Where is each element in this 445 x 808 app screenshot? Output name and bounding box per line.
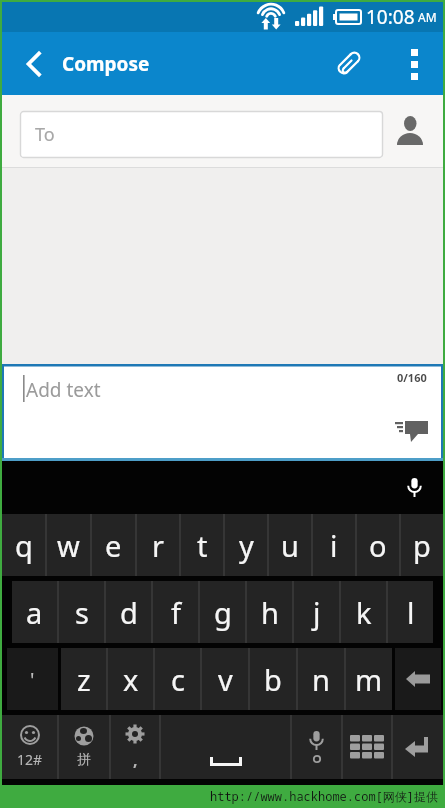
button[interactable]: e bbox=[92, 514, 135, 576]
staticText: p bbox=[413, 526, 431, 565]
button[interactable]: i bbox=[313, 514, 355, 576]
staticText: 10:08 bbox=[366, 4, 415, 30]
button[interactable] bbox=[327, 43, 369, 85]
button[interactable]: a bbox=[12, 581, 57, 643]
staticText: To bbox=[35, 122, 55, 147]
staticText: x bbox=[123, 660, 139, 699]
button[interactable] bbox=[343, 715, 391, 779]
staticText: d bbox=[120, 593, 138, 632]
staticText: z bbox=[77, 660, 91, 699]
button[interactable] bbox=[393, 715, 443, 779]
staticText: c bbox=[171, 660, 185, 699]
button[interactable] bbox=[16, 46, 52, 82]
staticText: o bbox=[369, 526, 387, 565]
staticText: ' bbox=[30, 666, 35, 693]
button[interactable]: w bbox=[47, 514, 90, 576]
staticText: k bbox=[356, 593, 372, 632]
staticText: AM bbox=[418, 9, 437, 25]
button[interactable]: h bbox=[247, 581, 292, 643]
button[interactable]: g bbox=[200, 581, 245, 643]
staticText: 0/160 bbox=[397, 370, 427, 385]
button[interactable]: x bbox=[108, 648, 153, 710]
button[interactable]: f bbox=[153, 581, 198, 643]
staticText: http://www.hackhome.com[网侠]提供 bbox=[210, 788, 439, 804]
button[interactable] bbox=[390, 111, 430, 151]
staticText: n bbox=[312, 660, 330, 699]
button[interactable]: l bbox=[388, 581, 433, 643]
button[interactable]: v bbox=[202, 648, 248, 710]
staticText: y bbox=[239, 526, 254, 565]
button[interactable]: z bbox=[61, 648, 106, 710]
staticText: h bbox=[261, 593, 279, 632]
staticText: f bbox=[171, 593, 181, 632]
button[interactable]: o bbox=[357, 514, 399, 576]
button[interactable]: u bbox=[269, 514, 311, 576]
staticText: j bbox=[313, 593, 321, 632]
button[interactable]: b bbox=[250, 648, 296, 710]
staticText: s bbox=[75, 593, 89, 632]
button[interactable]: d bbox=[106, 581, 151, 643]
button[interactable]: 12# bbox=[2, 715, 57, 779]
staticText: 拼 bbox=[77, 751, 91, 769]
button[interactable]: c bbox=[155, 648, 200, 710]
staticText: 12# bbox=[17, 750, 43, 769]
button[interactable] bbox=[399, 473, 429, 503]
button[interactable]: j bbox=[294, 581, 339, 643]
button[interactable]: m bbox=[346, 648, 392, 710]
staticText: e bbox=[105, 526, 122, 565]
staticText: r bbox=[152, 526, 164, 565]
staticText: q bbox=[15, 526, 33, 565]
staticText: l bbox=[407, 593, 415, 632]
staticText: m bbox=[355, 660, 383, 699]
staticText: , bbox=[133, 749, 138, 771]
button[interactable]: n bbox=[298, 648, 344, 710]
button[interactable]: q bbox=[2, 514, 45, 576]
staticText: a bbox=[26, 593, 43, 632]
staticText: Compose bbox=[62, 51, 150, 77]
button[interactable] bbox=[391, 416, 431, 448]
button[interactable]: k bbox=[341, 581, 386, 643]
staticText: i bbox=[330, 526, 338, 565]
staticText: t bbox=[197, 526, 208, 565]
button[interactable] bbox=[399, 49, 429, 79]
staticText: b bbox=[264, 660, 282, 699]
button[interactable]: ' bbox=[7, 648, 58, 710]
button[interactable] bbox=[395, 648, 441, 710]
button[interactable]: To bbox=[20, 111, 383, 158]
button[interactable] bbox=[161, 715, 290, 779]
staticText: w bbox=[57, 526, 80, 565]
staticText: u bbox=[281, 526, 299, 565]
staticText: g bbox=[214, 593, 232, 632]
button[interactable]: p bbox=[401, 514, 443, 576]
button[interactable]: r bbox=[137, 514, 179, 576]
button[interactable]: Add text bbox=[2, 364, 443, 461]
button[interactable] bbox=[292, 715, 341, 779]
button[interactable]: 拼 bbox=[59, 715, 109, 779]
button[interactable]: t bbox=[181, 514, 223, 576]
button[interactable]: , bbox=[111, 715, 159, 779]
button[interactable]: s bbox=[59, 581, 104, 643]
button[interactable]: y bbox=[225, 514, 267, 576]
staticText: Add text bbox=[26, 377, 101, 403]
staticText: v bbox=[218, 660, 233, 699]
